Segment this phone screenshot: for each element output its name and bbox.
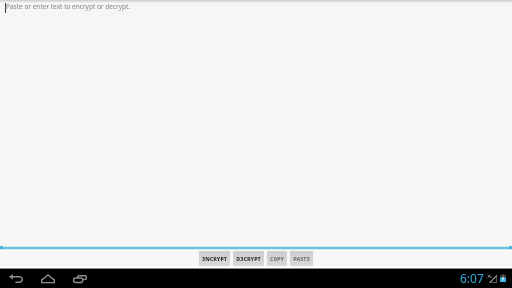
button[interactable]: Paste or enter text to encrypt or decryp… xyxy=(0,0,512,247)
staticText: PAST3 xyxy=(293,255,310,263)
staticText: Paste or enter text to encrypt or decryp… xyxy=(6,2,131,11)
staticText: C0PY xyxy=(270,255,284,263)
button[interactable]: Recent apps xyxy=(68,269,92,288)
staticText: D3CRYPT xyxy=(236,255,261,262)
button[interactable]: C0PY xyxy=(267,251,287,266)
button[interactable]: PAST3 xyxy=(290,251,313,266)
staticText: 3NCRYPT xyxy=(202,255,227,262)
other: Status xyxy=(460,270,506,286)
button[interactable]: 3NCRYPT xyxy=(199,251,230,266)
staticText: 6:07 xyxy=(460,270,484,286)
button[interactable]: Home xyxy=(36,269,60,288)
button[interactable]: Back xyxy=(4,269,28,288)
button[interactable]: D3CRYPT xyxy=(233,251,264,266)
